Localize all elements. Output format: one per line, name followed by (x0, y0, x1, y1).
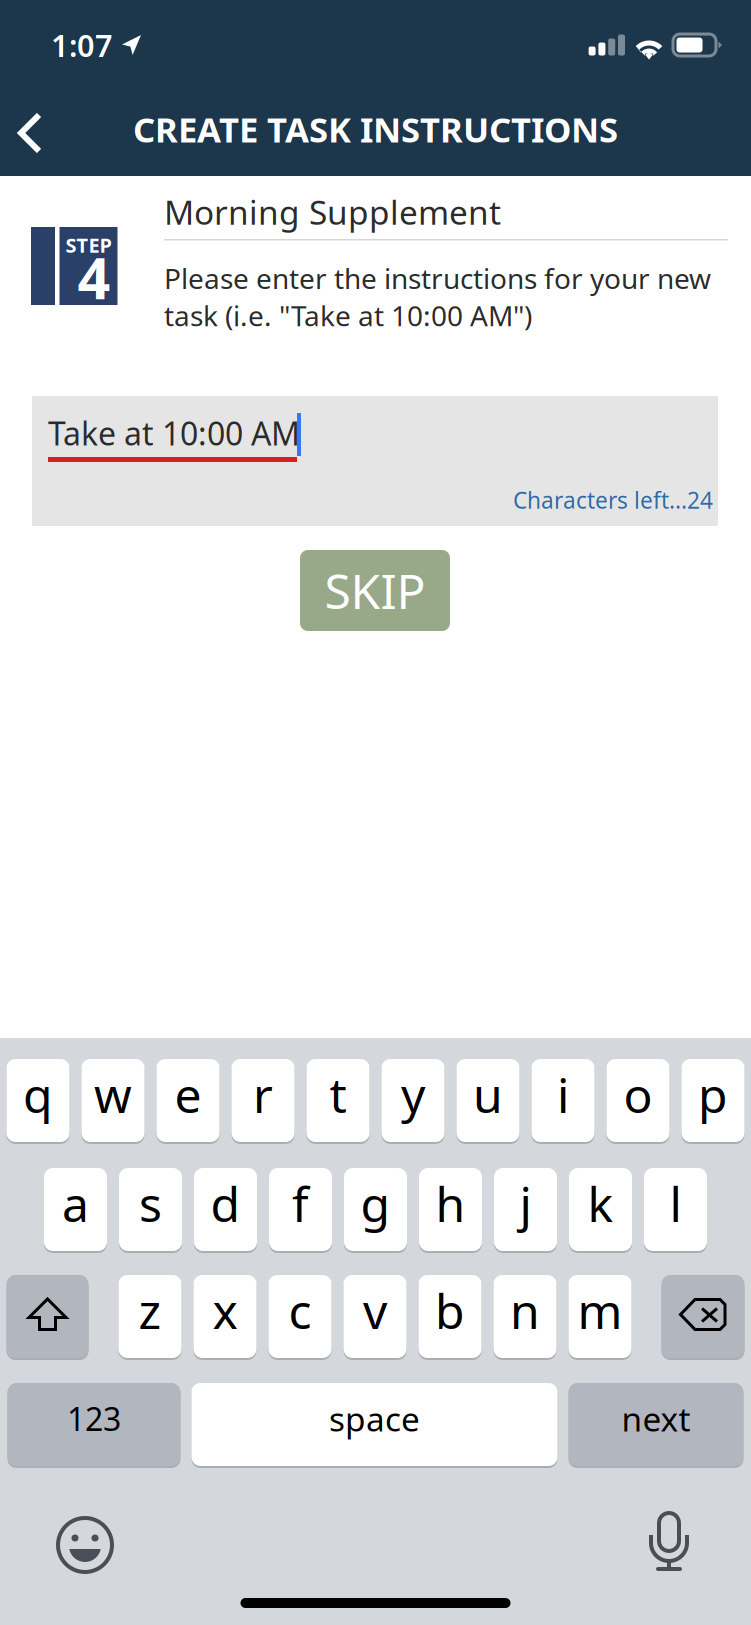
button[interactable]: u (456, 1059, 519, 1144)
staticText: g (360, 1172, 390, 1235)
staticText: m (577, 1279, 622, 1342)
staticText: w (94, 1063, 132, 1126)
staticText: d (210, 1172, 240, 1235)
staticText: Please enter the instructions for your n… (164, 259, 711, 334)
button[interactable]: p (681, 1059, 744, 1144)
button[interactable]: l (644, 1168, 707, 1253)
button[interactable]: next (568, 1383, 743, 1468)
staticText: r (253, 1063, 273, 1126)
staticText: c (288, 1279, 311, 1342)
button[interactable]: y (381, 1059, 444, 1144)
button[interactable]: r (231, 1059, 294, 1144)
button[interactable]: 123 (7, 1383, 180, 1468)
button[interactable]: t (306, 1059, 369, 1144)
button[interactable]: k (569, 1168, 632, 1253)
staticText: f (292, 1172, 309, 1235)
button[interactable]: s (119, 1168, 182, 1253)
staticText: i (557, 1063, 569, 1126)
staticText: a (62, 1172, 89, 1235)
button[interactable]: i (531, 1059, 594, 1144)
button[interactable]: Emoji (53, 1513, 117, 1577)
staticText: x (212, 1279, 237, 1342)
button[interactable]: Dictate (637, 1513, 701, 1577)
button[interactable]: m (568, 1275, 631, 1360)
button[interactable]: x (193, 1275, 256, 1360)
button[interactable]: f (269, 1168, 332, 1253)
staticText: y (401, 1063, 425, 1126)
staticText: e (174, 1063, 201, 1126)
staticText: u (473, 1063, 503, 1126)
button[interactable]: n (493, 1275, 556, 1360)
staticText: z (138, 1279, 161, 1342)
button[interactable]: e (156, 1059, 219, 1144)
staticText: p (698, 1063, 728, 1126)
button[interactable]: g (344, 1168, 407, 1253)
button[interactable]: space (191, 1383, 557, 1468)
button[interactable]: Back (0, 90, 62, 176)
staticText: j (519, 1172, 531, 1235)
button[interactable]: b (418, 1275, 481, 1360)
button[interactable]: d (194, 1168, 257, 1253)
button[interactable]: q (6, 1059, 69, 1144)
staticText: t (329, 1063, 346, 1126)
staticText: Take at 10:00 AM (48, 412, 300, 454)
staticText: STEP (65, 232, 111, 258)
staticText: l (669, 1172, 681, 1235)
staticText: h (435, 1172, 465, 1235)
button[interactable]: c (268, 1275, 331, 1360)
staticText: o (623, 1063, 652, 1126)
staticText: s (139, 1172, 162, 1235)
button[interactable]: w (81, 1059, 144, 1144)
staticText: SKIP (324, 559, 425, 622)
staticText: q (23, 1063, 53, 1126)
staticText: k (587, 1172, 613, 1235)
staticText: v (363, 1279, 387, 1342)
staticText: 1:07 (51, 25, 113, 65)
button[interactable]: SKIP (300, 550, 450, 631)
staticText: 123 (67, 1397, 121, 1440)
button[interactable]: Delete (661, 1275, 744, 1360)
staticText: n (510, 1279, 540, 1342)
button[interactable]: z (118, 1275, 181, 1360)
staticText: 4 (77, 239, 110, 315)
staticText: next (621, 1396, 690, 1441)
staticText: Characters left...24 (513, 485, 713, 515)
staticText: space (329, 1396, 420, 1441)
staticText: Morning Supplement (164, 190, 501, 234)
staticText: CREATE TASK INSTRUCTIONS (133, 106, 618, 152)
button[interactable]: v (343, 1275, 406, 1360)
staticText: b (435, 1279, 465, 1342)
button[interactable]: j (494, 1168, 557, 1253)
button[interactable]: h (419, 1168, 482, 1253)
button[interactable]: Shift (6, 1275, 88, 1360)
button[interactable]: a (44, 1168, 107, 1253)
button[interactable]: o (606, 1059, 669, 1144)
